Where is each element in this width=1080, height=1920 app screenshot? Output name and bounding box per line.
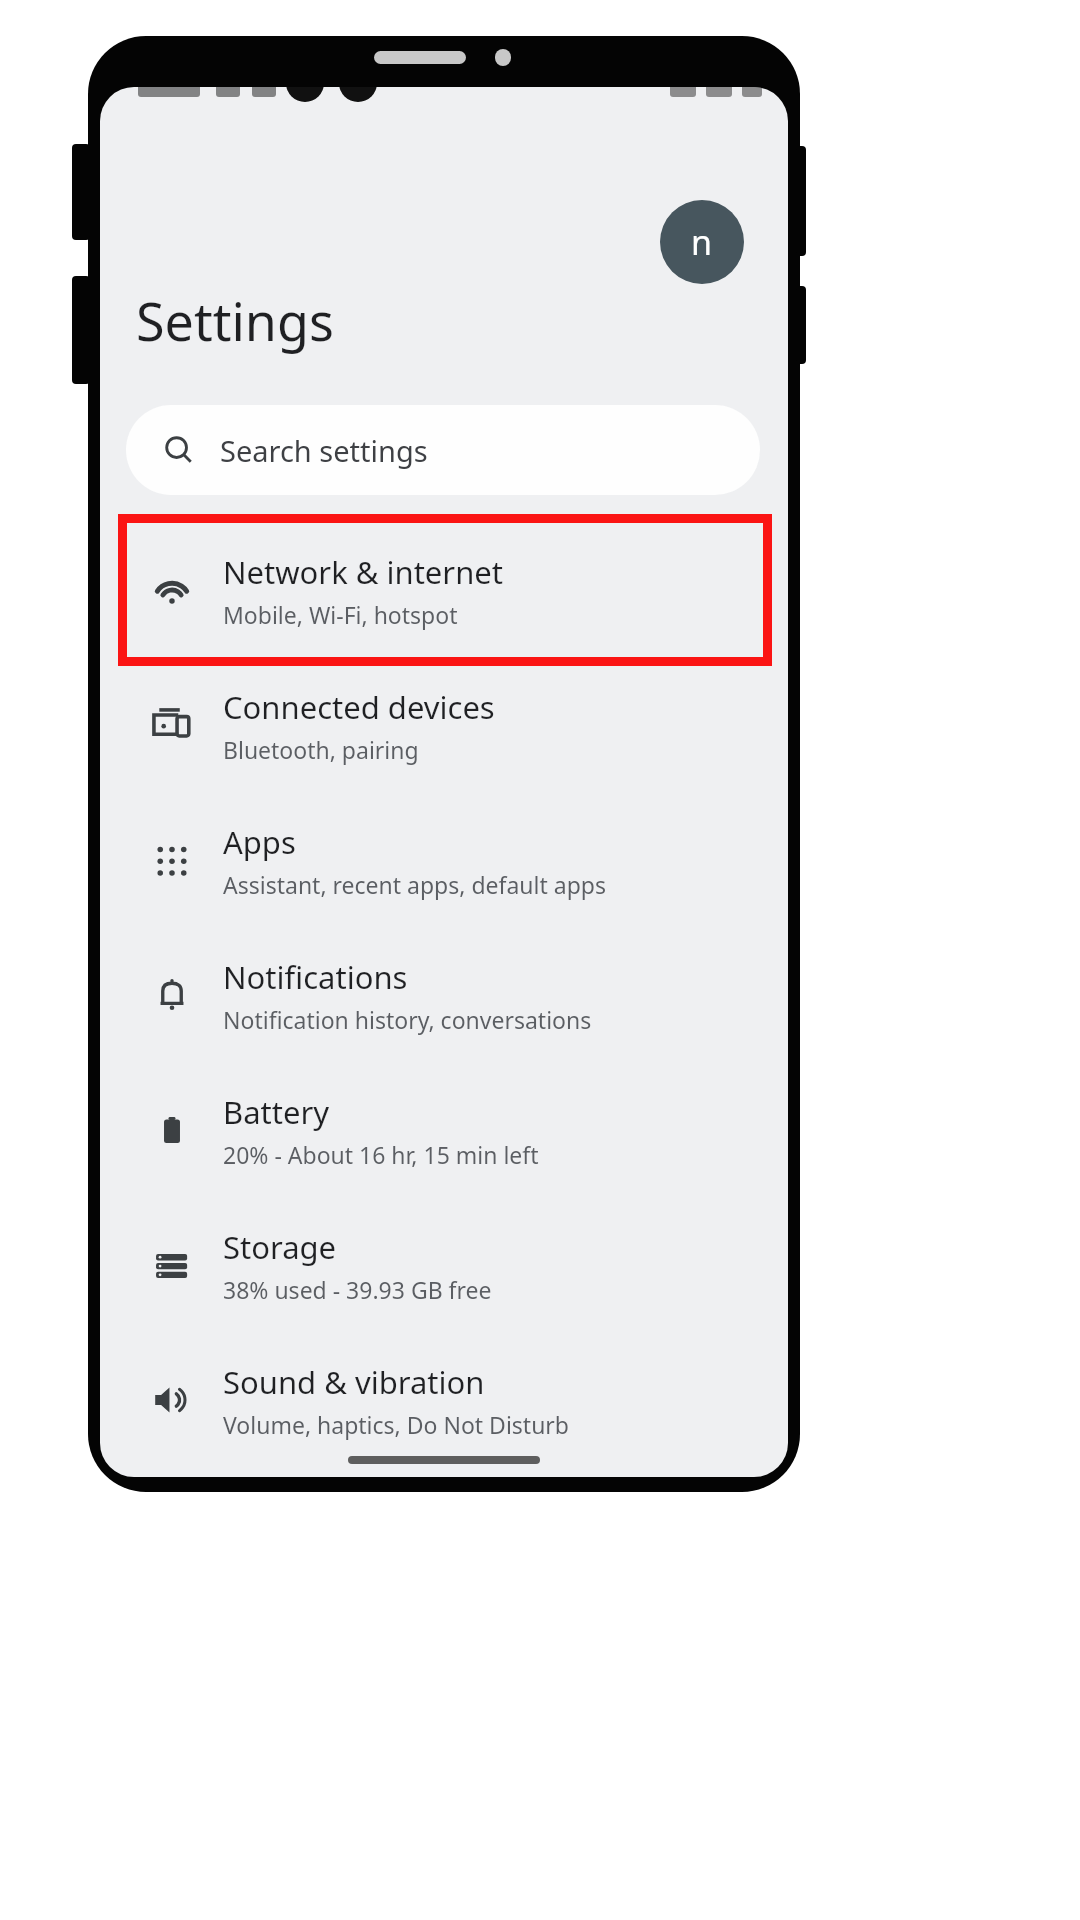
button[interactable]: Apps bbox=[126, 793, 762, 927]
staticText: Sound & vibration bbox=[223, 1361, 485, 1403]
staticText: n bbox=[691, 219, 713, 265]
staticText: Bluetooth, pairing bbox=[223, 734, 419, 765]
staticText: Search settings bbox=[220, 431, 428, 470]
button[interactable]: Storage bbox=[126, 1198, 762, 1332]
staticText: Notification history, conversations bbox=[223, 1004, 592, 1035]
button[interactable]: Notifications bbox=[126, 928, 762, 1062]
staticText: 38% used - 39.93 GB free bbox=[223, 1274, 492, 1305]
button[interactable]: Battery bbox=[126, 1063, 762, 1197]
staticText: Settings bbox=[136, 285, 334, 356]
staticText: Notifications bbox=[223, 956, 408, 998]
button[interactable]: Sound & vibration bbox=[126, 1333, 762, 1467]
button[interactable]: Connected devices bbox=[126, 658, 762, 792]
staticText: Connected devices bbox=[223, 686, 495, 728]
staticText: Network & internet bbox=[223, 551, 503, 593]
staticText: Mobile, Wi-Fi, hotspot bbox=[223, 599, 458, 630]
staticText: Apps bbox=[223, 821, 296, 863]
staticText: Volume, haptics, Do Not Disturb bbox=[223, 1409, 569, 1440]
button[interactable]: Network & internet bbox=[126, 523, 762, 657]
button[interactable]: Search settings bbox=[126, 405, 760, 495]
staticText: 20% - About 16 hr, 15 min left bbox=[223, 1139, 539, 1170]
button[interactable]: Account bbox=[660, 200, 744, 284]
staticText: Assistant, recent apps, default apps bbox=[223, 869, 606, 900]
staticText: Battery bbox=[223, 1091, 330, 1133]
staticText: Storage bbox=[223, 1226, 337, 1268]
